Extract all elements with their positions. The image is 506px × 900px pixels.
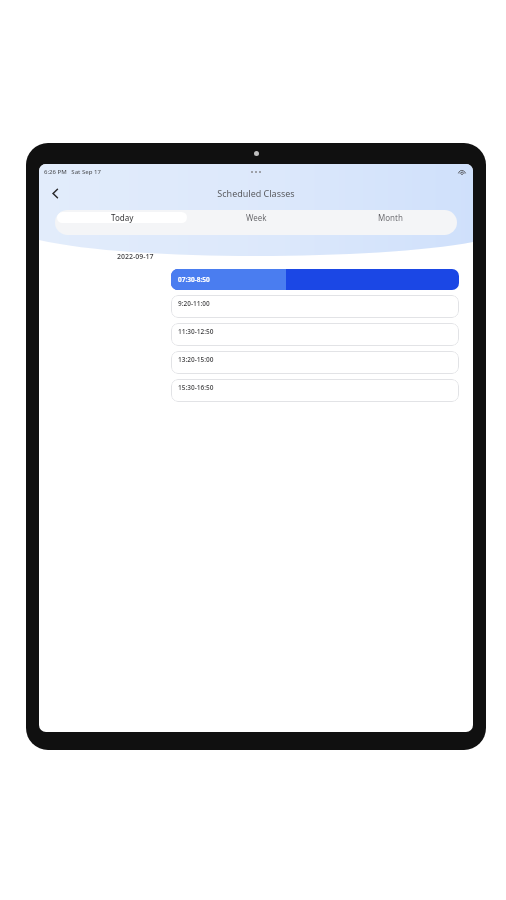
- staticText: Today: [111, 212, 134, 223]
- staticText: 6:26 PM Sat Sep 17: [44, 168, 101, 176]
- button[interactable]: 11:30-12:50: [171, 323, 459, 346]
- staticText: 07:30-8:50: [178, 275, 210, 284]
- button[interactable]: 13:20-15:00: [171, 351, 459, 374]
- other: Wi-Fi: [458, 168, 466, 176]
- staticText: 15:30-16:50: [178, 383, 214, 392]
- button[interactable]: 9:20-11:00: [171, 295, 459, 318]
- button[interactable]: Month: [325, 212, 455, 223]
- button[interactable]: Back: [45, 183, 65, 203]
- button[interactable]: Today: [57, 212, 187, 223]
- button[interactable]: 07:30-8:50: [171, 269, 459, 290]
- staticText: 2022-09-17: [117, 252, 154, 262]
- staticText: 11:30-12:50: [178, 327, 214, 336]
- staticText: 13:20-15:00: [178, 355, 214, 364]
- staticText: Scheduled Classes: [217, 187, 295, 199]
- button[interactable]: 15:30-16:50: [171, 379, 459, 402]
- staticText: Month: [378, 212, 403, 223]
- staticText: 9:20-11:00: [178, 299, 210, 308]
- staticText: Week: [246, 212, 267, 223]
- button[interactable]: Week: [191, 212, 321, 223]
